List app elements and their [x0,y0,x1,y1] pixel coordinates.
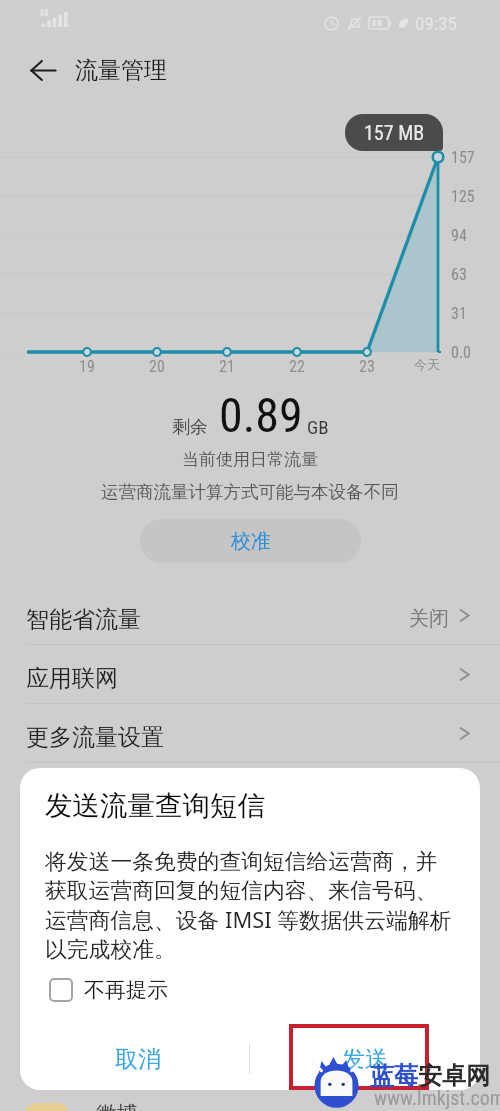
staticText: 22 [289,357,305,376]
staticText: 157 MB [364,121,425,144]
staticText: 运营商流量计算方式可能与本设备不同 [101,481,399,503]
button[interactable]: 校准 [140,519,361,563]
staticText: 0.0 [451,343,472,362]
button[interactable]: 取消 [20,1030,249,1088]
button[interactable]: 更多流量设置 [0,704,500,762]
staticText: GB [307,416,329,438]
button[interactable]: 应用联网 [0,645,500,703]
button[interactable]: 不再提示 [46,974,171,1006]
staticText: 当前使用日常流量 [182,449,318,470]
staticText: 发送流量查询短信 [45,789,265,824]
button[interactable]: Back [20,47,66,93]
staticText: 20 [149,357,165,376]
staticText: 31 [451,304,467,323]
staticText: 将发送一条免费的查询短信给运营商，并获取运营商回复的短信内容、来信号码、运营商信… [45,848,459,963]
staticText: 94 [451,226,467,245]
staticText: 157 [451,148,475,167]
staticText: 取消 [115,1045,161,1074]
staticText: 安卓网 [418,1061,490,1091]
staticText: 微博 [96,1101,138,1111]
staticText: 更多流量设置 [26,723,164,752]
staticText: 19 [79,357,95,376]
button[interactable]: 智能省流量 [0,586,500,644]
staticText: 关闭 [409,606,449,631]
staticText: 23 [359,357,375,376]
staticText: 63 [451,265,467,284]
staticText: 应用联网 [26,664,118,693]
staticText: 125 [451,187,475,206]
button[interactable]: 发送 [250,1030,480,1088]
staticText: 剩余 [172,416,208,439]
staticText: 不再提示 [84,977,168,1003]
staticText: 流量管理 [75,56,167,85]
staticText: 21 [219,357,235,376]
staticText: 校准 [231,529,271,554]
staticText: 智能省流量 [26,605,141,634]
staticText: www.lmkjst.com [374,1086,500,1109]
staticText: 0.89 [219,387,303,443]
staticText: 发送 [342,1045,388,1074]
staticText: 今天 [414,356,440,372]
staticText: 蓝莓 [370,1061,418,1091]
staticText: 09:35 [415,12,457,34]
